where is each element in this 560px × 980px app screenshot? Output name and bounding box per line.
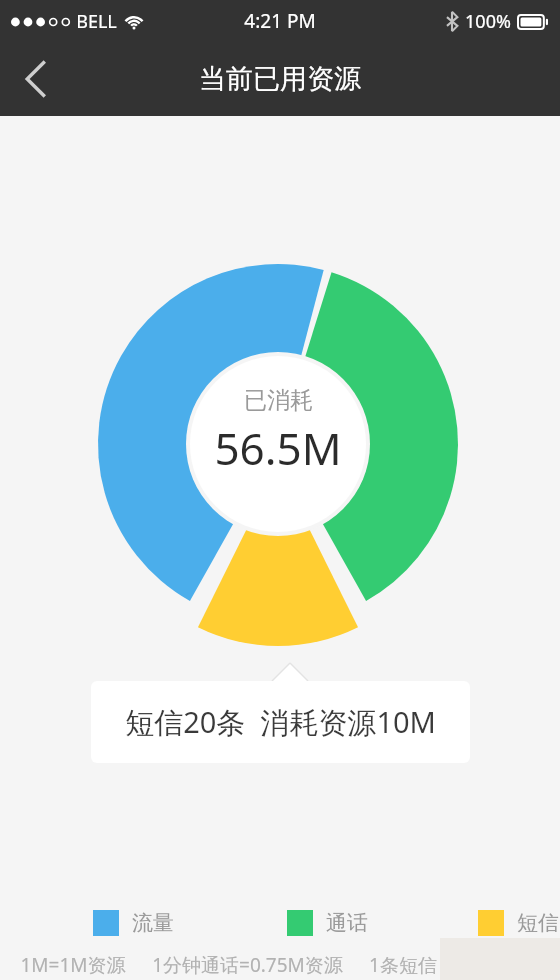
staticText: 短信 — [517, 910, 559, 936]
button[interactable]: Back — [0, 42, 72, 116]
staticText: 56.5M — [214, 418, 342, 478]
staticText: 100% — [465, 9, 511, 34]
staticText: 4:21 PM — [244, 8, 316, 34]
staticText: 已消耗 — [244, 386, 313, 415]
button[interactable]: 通话 — [287, 910, 368, 936]
button[interactable]: 短信 — [478, 910, 559, 936]
staticText: 短信20条 消耗资源10M — [125, 702, 436, 742]
staticText: BELL — [76, 9, 117, 34]
button[interactable]: 流量 — [93, 910, 174, 936]
staticText: 1分钟通话=0.75M资源 — [152, 952, 343, 978]
staticText: 通话 — [326, 910, 368, 936]
staticText: 1条短信 — [369, 952, 437, 978]
staticText: 当前已用资源 — [199, 62, 361, 96]
button[interactable]: 短信20条 消耗资源10M — [91, 681, 470, 763]
staticText: 1M=1M资源 — [20, 952, 126, 978]
staticText: 流量 — [132, 910, 174, 936]
